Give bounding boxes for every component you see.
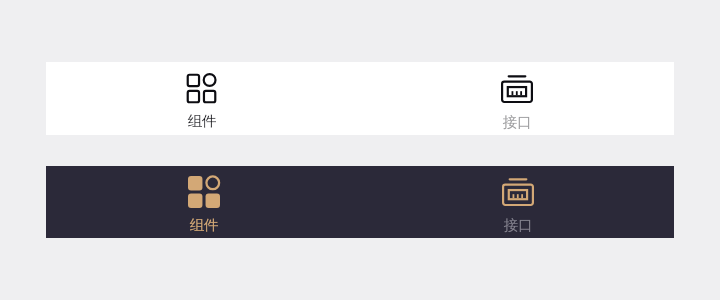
button[interactable]: 组件	[46, 166, 360, 238]
button[interactable]: 接口	[360, 166, 674, 238]
staticText: 接口	[502, 113, 532, 131]
button[interactable]: 组件	[46, 62, 360, 135]
button[interactable]: 接口	[360, 62, 674, 135]
staticText: 组件	[187, 112, 217, 130]
staticText: 组件	[189, 216, 219, 234]
staticText: 接口	[503, 216, 533, 234]
